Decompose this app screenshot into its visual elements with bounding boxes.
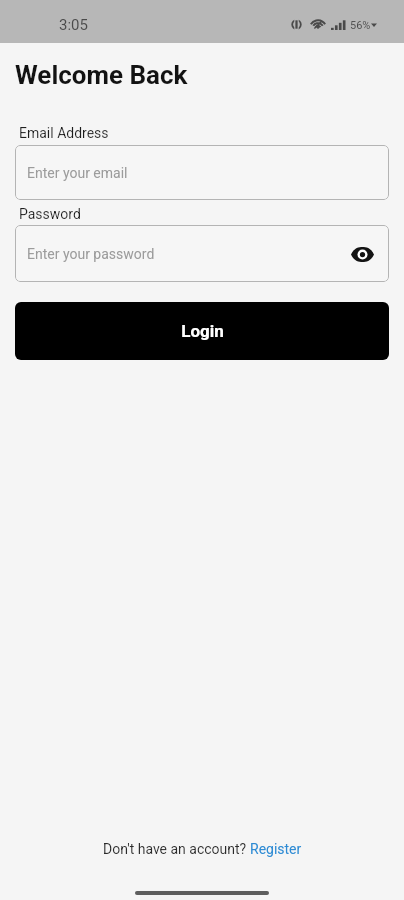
staticText: Email Address bbox=[19, 125, 109, 141]
button[interactable]: Show password bbox=[349, 241, 375, 267]
staticText: Welcome Back bbox=[15, 60, 188, 90]
button[interactable]: Enter your email bbox=[15, 145, 389, 200]
staticText: Register bbox=[250, 841, 302, 857]
staticText: Don't have an account? bbox=[103, 841, 250, 857]
staticText: 56% bbox=[350, 19, 371, 32]
button[interactable]: Enter your password bbox=[15, 225, 389, 282]
staticText: 3:05 bbox=[59, 16, 88, 34]
staticText: Enter your email bbox=[27, 165, 128, 181]
staticText: Login bbox=[181, 321, 224, 341]
button[interactable]: Register bbox=[250, 841, 302, 857]
staticText: Enter your password bbox=[27, 246, 155, 262]
staticText: Password bbox=[19, 206, 81, 222]
button[interactable]: Login bbox=[15, 302, 389, 360]
